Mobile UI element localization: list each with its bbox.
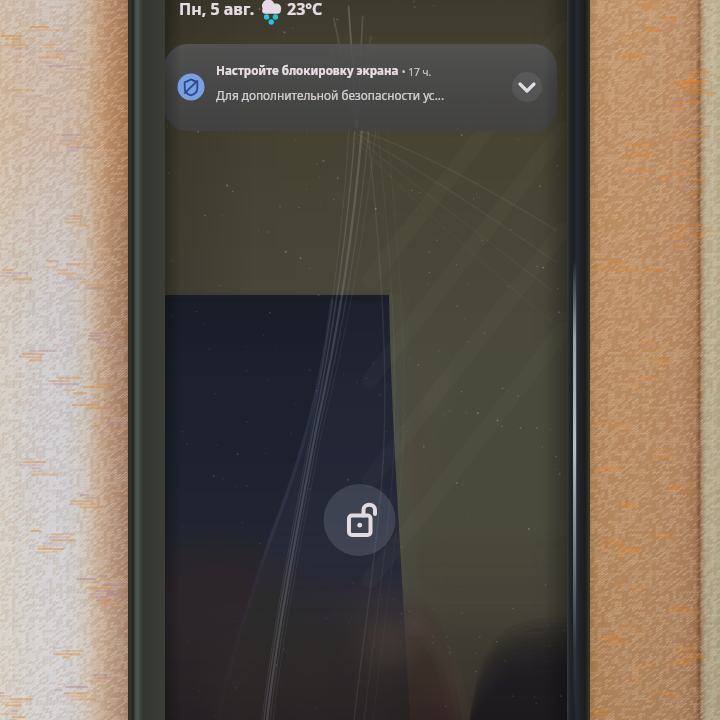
button[interactable]: Expand notification (511, 115, 543, 147)
button[interactable]: Date and weather, Пн, 5 авг., 23°C (179, 0, 324, 22)
button[interactable]: Expand notification (164, 44, 557, 131)
button[interactable]: Unlock (323, 484, 395, 556)
